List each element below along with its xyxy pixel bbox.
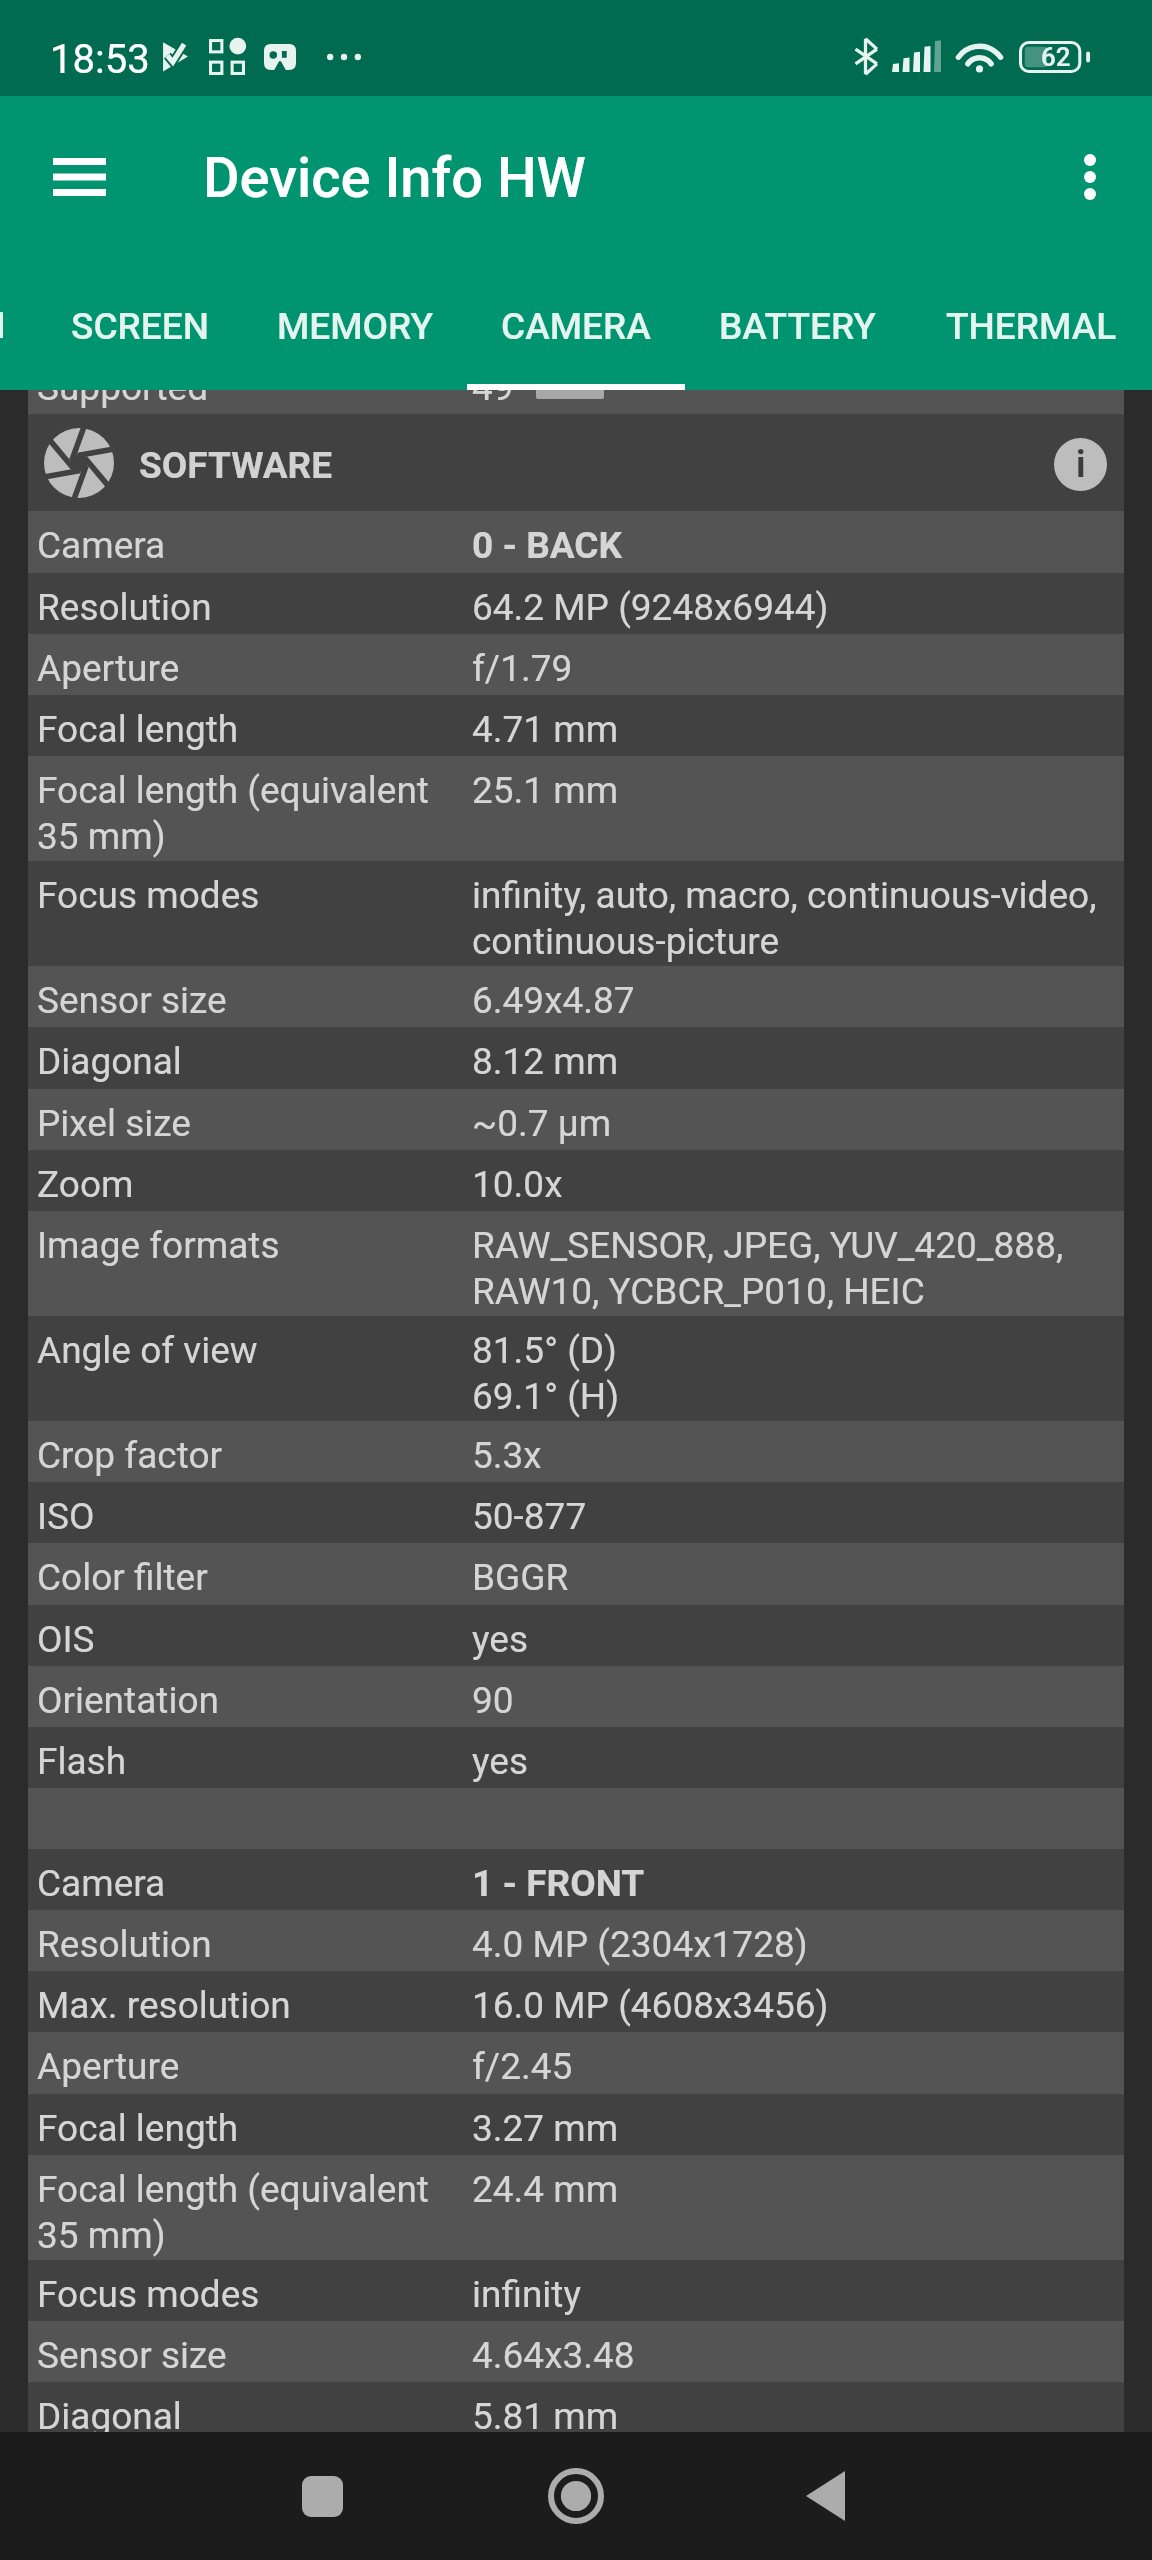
staticText: Focal length (equivalent 35 mm) (37, 2168, 429, 2257)
button[interactable]: Sensor size (28, 2321, 1124, 2383)
staticText: Supported (37, 390, 209, 409)
button[interactable]: Back (760, 2432, 890, 2560)
staticText: THERMAL (946, 305, 1117, 348)
button[interactable]: Focus modes (28, 861, 1124, 967)
button[interactable]: Home (511, 2432, 641, 2560)
button[interactable]: Orientation (28, 1666, 1124, 1728)
staticText: Aperture (37, 647, 180, 690)
staticText: Resolution (37, 1923, 212, 1966)
button[interactable]: CAMERA (467, 282, 685, 390)
staticText: Zoom (37, 1163, 134, 1206)
staticText: Crop factor (37, 1434, 223, 1477)
button[interactable]: BATTERY (685, 282, 910, 390)
button[interactable]: OIS (28, 1605, 1124, 1667)
button[interactable]: Crop factor (28, 1421, 1124, 1483)
button[interactable]: Image formats (28, 1211, 1124, 1317)
staticText: yes (472, 1740, 528, 1783)
staticText: Focal length (37, 2107, 239, 2150)
button[interactable]: Aperture (28, 634, 1124, 696)
button[interactable]: Resolution (28, 1910, 1124, 1972)
button[interactable]: Resolution (28, 573, 1124, 635)
button[interactable]: Focal length (28, 2094, 1124, 2156)
staticText: 10.0x (472, 1163, 563, 1206)
button[interactable]: Zoom (28, 1150, 1124, 1212)
staticText: OIS (37, 1618, 95, 1661)
staticText: Sensor size (37, 2334, 227, 2377)
staticText: Aperture (37, 2045, 180, 2088)
staticText: Diagonal (37, 1040, 182, 1083)
button[interactable]: ISO (28, 1482, 1124, 1544)
staticText: Pixel size (37, 1102, 191, 1145)
staticText: BGGR (472, 1556, 569, 1599)
staticText: 25.1 mm (472, 769, 619, 812)
button[interactable]: MEMORY (243, 282, 467, 390)
button[interactable]: SCREEN (37, 282, 243, 390)
staticText: Sensor size (37, 979, 227, 1022)
button[interactable]: Recent apps (257, 2432, 387, 2560)
staticText: 81.5° (D) 69.1° (H) (472, 1329, 620, 1418)
staticText: 3.27 mm (472, 2107, 619, 2150)
staticText: 90 (472, 1679, 514, 1722)
staticText: 62 (1041, 42, 1071, 72)
staticText: Max. resolution (37, 1984, 291, 2027)
staticText: infinity (472, 2273, 581, 2316)
staticText: SOFTWARE (139, 444, 333, 487)
button[interactable]: Sensor size (28, 966, 1124, 1028)
staticText: 1 - FRONT (472, 1862, 645, 1905)
staticText: Flash (37, 1740, 127, 1783)
staticText: Focus modes (37, 874, 260, 917)
staticText: 5.81 mm (472, 2395, 619, 2432)
staticText: 4.64x3.48 (472, 2334, 635, 2377)
button[interactable]: Camera (28, 511, 1124, 573)
button[interactable]: Color filter (28, 1543, 1124, 1605)
staticText: Device Info HW (203, 145, 586, 211)
staticText: ~0.7 µm (472, 1102, 612, 1145)
button[interactable]: Max. resolution (28, 1971, 1124, 2033)
button[interactable]: Focal length (28, 695, 1124, 757)
button[interactable]: Diagonal (28, 2382, 1124, 2432)
staticText: 16.0 MP (4608x3456) (472, 1984, 829, 2027)
staticText: Camera (37, 524, 166, 567)
staticText: 5.3x (472, 1434, 542, 1477)
button[interactable]: Aperture (28, 2032, 1124, 2094)
staticText: 8.12 mm (472, 1040, 619, 1083)
button[interactable]: Focal length (equivalent 35 mm) (28, 756, 1124, 862)
staticText: f/1.79 (472, 647, 573, 690)
staticText: BATTERY (719, 305, 876, 348)
staticText: Focus modes (37, 2273, 260, 2316)
staticText: 64.2 MP (9248x6944) (472, 586, 829, 629)
button[interactable]: Info (1054, 438, 1107, 491)
staticText: RAW_SENSOR, JPEG, YUV_420_888, RAW10, YC… (472, 1224, 1064, 1313)
staticText: Color filter (37, 1556, 208, 1599)
staticText: Diagonal (37, 2395, 182, 2432)
button[interactable]: Pixel size (28, 1089, 1124, 1151)
staticText: 24.4 mm (472, 2168, 619, 2211)
staticText: Angle of view (37, 1329, 258, 1372)
staticText: MEMORY (277, 305, 434, 348)
button[interactable]: Camera (28, 1849, 1124, 1911)
staticText: 0 - BACK (472, 524, 623, 567)
button[interactable]: Flash (28, 1727, 1124, 1789)
staticText: Orientation (37, 1679, 219, 1722)
button[interactable]: THERMAL (910, 282, 1152, 390)
staticText: f/2.45 (472, 2045, 573, 2088)
staticText: Resolution (37, 586, 212, 629)
staticText: Focal length (equivalent 35 mm) (37, 769, 429, 858)
button[interactable]: Open navigation drawer (25, 123, 133, 231)
staticText: ISO (37, 1495, 95, 1538)
button[interactable]: Focal length (equivalent 35 mm) (28, 2155, 1124, 2261)
staticText: infinity, auto, macro, continuous-video,… (472, 874, 1097, 963)
button[interactable]: Focus modes (28, 2260, 1124, 2322)
button[interactable]: More options (1036, 123, 1144, 231)
button[interactable]: Diagonal (28, 1027, 1124, 1089)
staticText: Focal length (37, 708, 239, 751)
button[interactable]: SOFTWARE (28, 414, 1124, 511)
button[interactable] (0, 282, 37, 390)
staticText: 50-877 (472, 1495, 587, 1538)
staticText: SCREEN (71, 305, 209, 348)
staticText: 49 (472, 390, 514, 409)
button[interactable]: Angle of view (28, 1316, 1124, 1422)
staticText: Camera (37, 1862, 166, 1905)
staticText: 18:53 (50, 36, 150, 83)
